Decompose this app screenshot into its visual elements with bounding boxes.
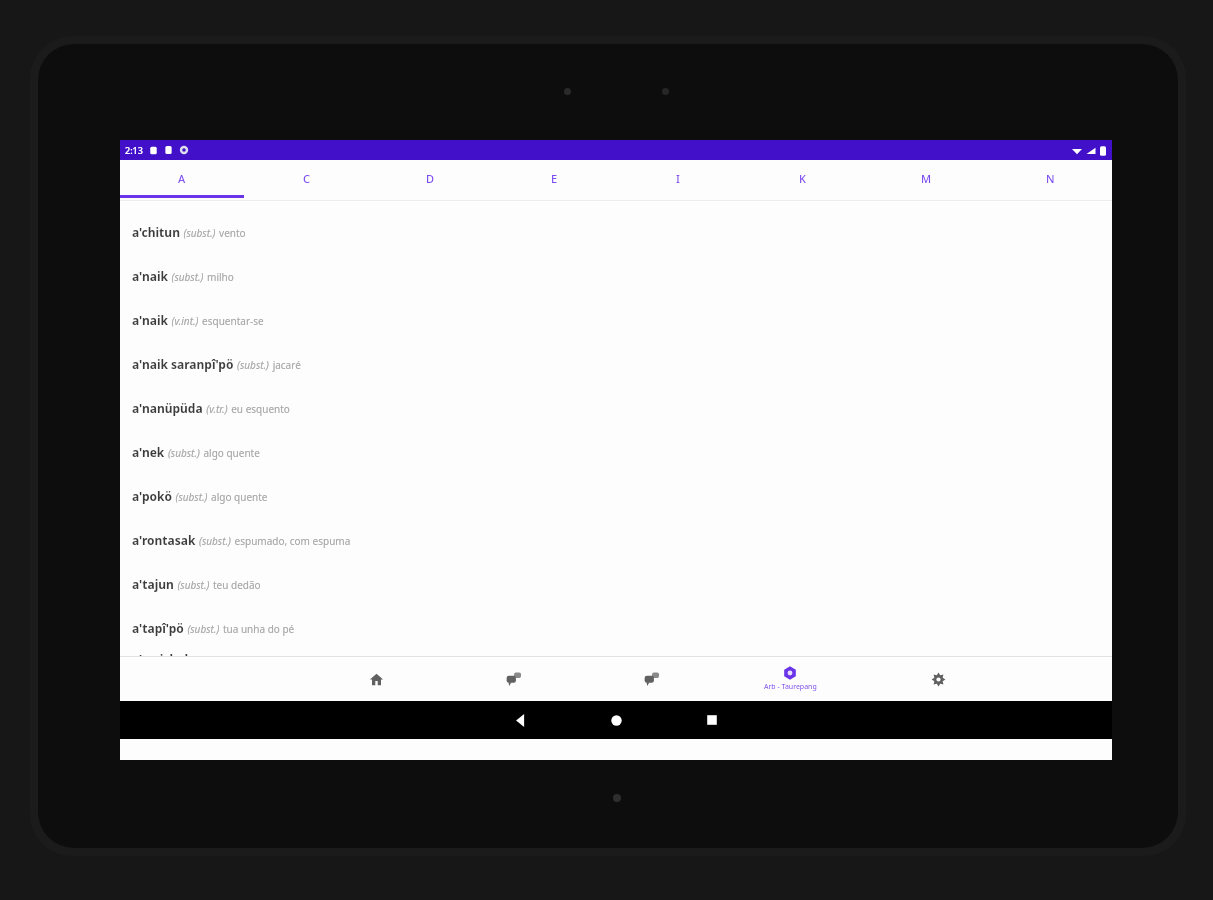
button[interactable]: a'naik saranpî'pö (subst.) jacaré xyxy=(120,341,1112,385)
staticText: I xyxy=(676,171,680,186)
staticText: M xyxy=(921,171,932,186)
staticText: C xyxy=(303,171,310,186)
button[interactable]: Phrases xyxy=(628,657,676,701)
staticText: a'naik saranpî'pö (subst.) jacaré xyxy=(132,354,301,373)
button[interactable]: Recents xyxy=(684,701,740,739)
button[interactable]: a'tapî'pö (subst.) tua unha do pé xyxy=(120,605,1112,649)
button[interactable]: a'rontasak (subst.) espumado, com espuma xyxy=(120,517,1112,561)
staticText: a'nek (subst.) algo quente xyxy=(132,442,260,461)
staticText: D xyxy=(426,171,435,186)
staticText: K xyxy=(799,171,806,186)
button[interactable]: E xyxy=(492,160,616,196)
button[interactable]: Back xyxy=(492,701,548,739)
staticText: a'tapî'pö (subst.) tua unha do pé xyxy=(132,618,295,637)
button[interactable]: Dictionary xyxy=(490,657,538,701)
staticText: A xyxy=(178,171,186,186)
button[interactable]: a'naik (v.int.) esquentar-se xyxy=(120,297,1112,341)
button[interactable]: I xyxy=(616,160,740,196)
staticText: a'nanüpüda (v.tr.) eu esquento xyxy=(132,398,290,417)
staticText: E xyxy=(551,171,558,186)
button[interactable]: Settings xyxy=(914,657,962,701)
button[interactable]: M xyxy=(864,160,988,196)
staticText: N xyxy=(1046,171,1055,186)
button[interactable]: Home xyxy=(352,657,400,701)
button[interactable]: C xyxy=(244,160,368,196)
button[interactable]: A xyxy=(120,160,244,196)
button[interactable]: a'nanüpüda (v.tr.) eu esquento xyxy=(120,385,1112,429)
button[interactable]: a'chitun (subst.) vento xyxy=(120,209,1112,253)
button[interactable]: a'tajun (subst.) teu dedão xyxy=(120,561,1112,605)
button[interactable]: a'pokö (subst.) algo quente xyxy=(120,473,1112,517)
staticText: 2:13 xyxy=(125,144,143,156)
staticText: a'naik (subst.) milho xyxy=(132,266,234,285)
button[interactable]: Arb - Taurepang xyxy=(736,657,844,701)
button[interactable]: a'nek (subst.) algo quente xyxy=(120,429,1112,473)
staticText: a'chitun (subst.) vento xyxy=(132,222,246,241)
button[interactable]: K xyxy=(740,160,864,196)
staticText: Arb - Taurepang xyxy=(764,682,817,692)
button[interactable]: Home xyxy=(588,701,644,739)
staticText: a'rontasak (subst.) espumado, com espuma xyxy=(132,530,351,549)
button[interactable]: N xyxy=(988,160,1112,196)
button[interactable]: D xyxy=(368,160,492,196)
button[interactable]: a'waichak (subst.) macaco da noite xyxy=(120,649,1112,656)
staticText: a'naik (v.int.) esquentar-se xyxy=(132,310,264,329)
staticText: a'waichak (subst.) macaco da noite xyxy=(132,649,309,656)
staticText: a'tajun (subst.) teu dedão xyxy=(132,574,261,593)
button[interactable]: a'naik (subst.) milho xyxy=(120,253,1112,297)
staticText: a'pokö (subst.) algo quente xyxy=(132,486,268,505)
